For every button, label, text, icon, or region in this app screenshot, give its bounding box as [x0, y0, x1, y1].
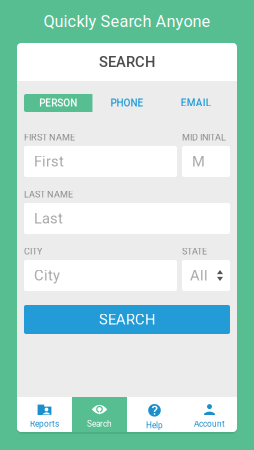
staticText: ?	[151, 402, 157, 418]
button[interactable]: Reports	[17, 397, 72, 432]
staticText: PERSON	[39, 97, 77, 109]
staticText: MID INITAL	[182, 132, 226, 143]
staticText: LAST NAME	[24, 189, 73, 200]
button[interactable]: Account	[182, 397, 237, 432]
staticText: Last	[34, 210, 63, 227]
button[interactable]: Search	[72, 397, 127, 432]
staticText: All	[190, 267, 208, 284]
staticText: Help	[146, 421, 163, 430]
button[interactable]: PHONE	[93, 94, 161, 112]
staticText: SEARCH	[99, 311, 155, 328]
staticText: SEARCH	[99, 53, 155, 71]
staticText: Reports	[30, 419, 59, 429]
staticText: STATE	[182, 246, 207, 257]
staticText: M	[192, 153, 205, 170]
button[interactable]: PERSON	[24, 94, 93, 112]
staticText: CITY	[24, 246, 42, 257]
button[interactable]: SEARCH	[24, 305, 230, 334]
staticText: EMAIL	[181, 97, 211, 109]
button[interactable]: EMAIL	[161, 94, 230, 112]
staticText: First	[34, 153, 64, 170]
button[interactable]: ?	[127, 397, 182, 432]
staticText: Quickly Search Anyone	[43, 12, 210, 31]
staticText: Search	[87, 419, 112, 429]
staticText: FIRST NAME	[24, 132, 75, 143]
staticText: Account	[194, 419, 225, 429]
staticText: City	[34, 267, 60, 284]
staticText: PHONE	[110, 97, 143, 109]
